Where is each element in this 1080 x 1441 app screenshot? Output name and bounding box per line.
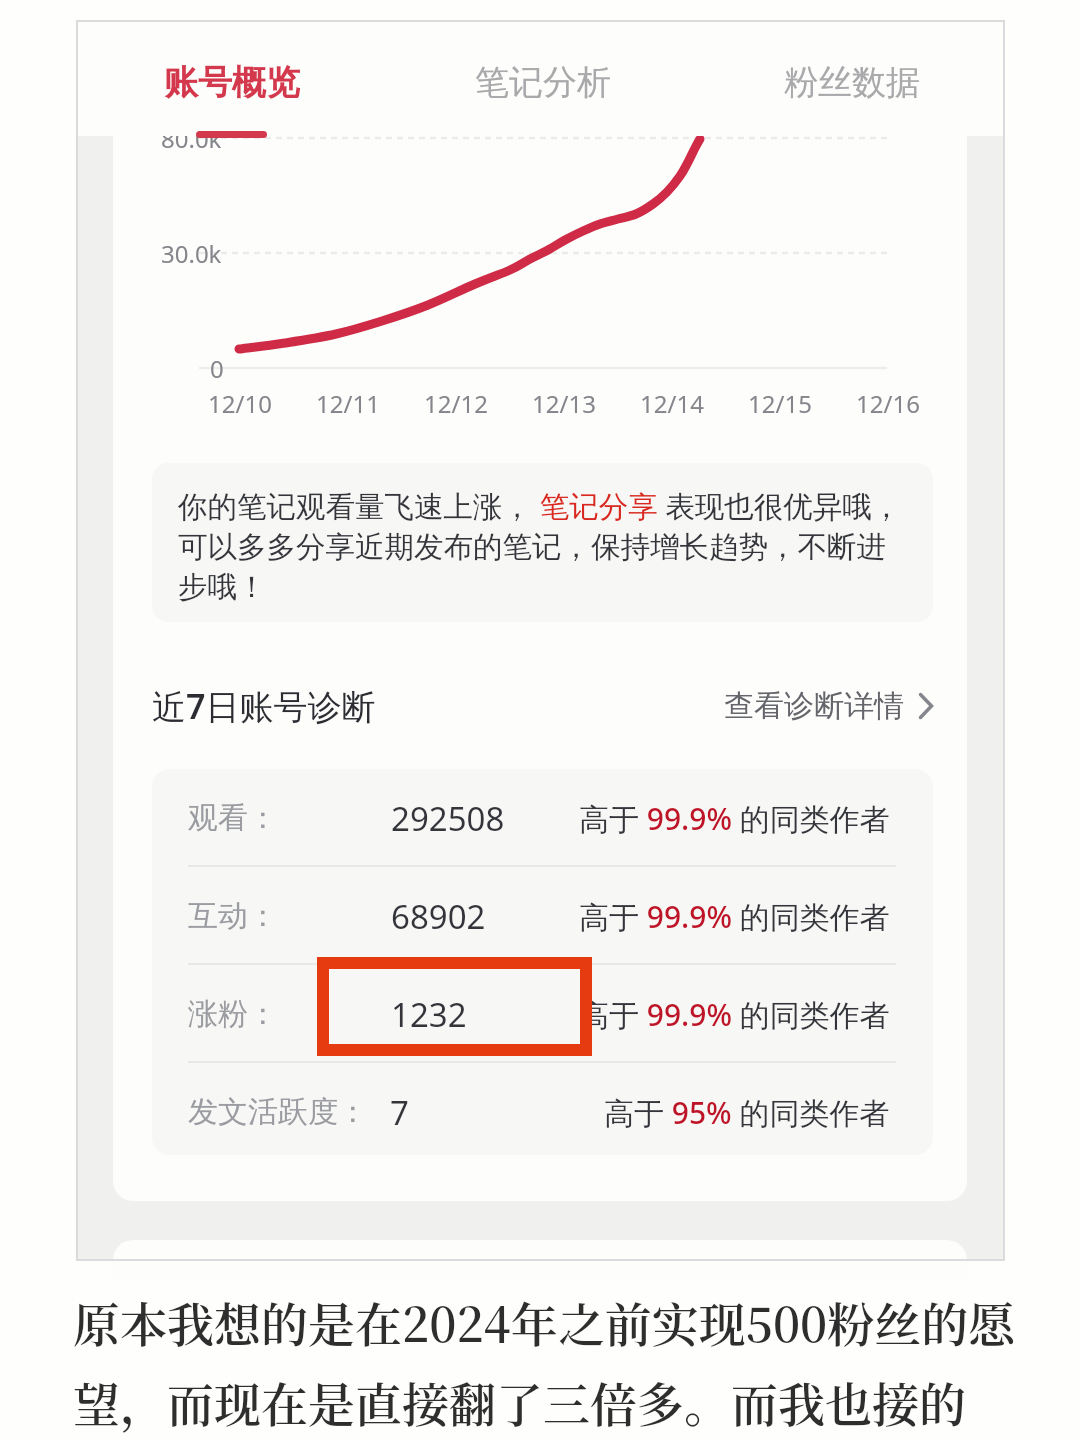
button[interactable]: 互动：	[152, 867, 933, 965]
staticText: 12/12	[396, 387, 516, 420]
staticText: 粉丝数据	[784, 61, 920, 104]
staticText: 12/15	[720, 387, 840, 420]
staticText: 7	[390, 1090, 409, 1135]
staticText: 查看诊断详情	[724, 687, 904, 725]
staticText: 12/13	[504, 387, 624, 420]
button[interactable]: 观看：	[152, 769, 933, 867]
staticText: 高于 99.9% 的同类作者	[579, 994, 890, 1035]
staticText: 账号概览	[164, 61, 300, 104]
staticText: 292508	[391, 796, 505, 841]
button[interactable]: 账号概览	[123, 28, 341, 136]
staticText: 0	[210, 352, 224, 385]
staticText: 互动：	[188, 897, 278, 935]
button[interactable]: 粉丝数据	[743, 28, 961, 136]
button[interactable]: 近7日账号诊断	[152, 672, 933, 740]
staticText: 近7日账号诊断	[152, 683, 376, 729]
staticText: 原本我想的是在2024年之前实现500粉丝的愿	[73, 1288, 1016, 1356]
staticText: 发文活跃度：	[188, 1093, 368, 1131]
button[interactable]: 涨粉：	[152, 965, 933, 1063]
staticText: 高于 99.9% 的同类作者	[579, 798, 890, 839]
button[interactable]: 笔记分析	[434, 28, 652, 136]
staticText: 涨粉：	[188, 995, 278, 1033]
staticText: 12/11	[288, 387, 408, 420]
staticText: 12/14	[612, 387, 732, 420]
button[interactable]: 发文活跃度：	[152, 1063, 933, 1155]
staticText: 望，而现在是直接翻了三倍多。而我也接的	[73, 1368, 966, 1436]
staticText: 30.0k	[161, 237, 222, 270]
staticText: 12/10	[180, 387, 300, 420]
staticText: 高于 95% 的同类作者	[604, 1092, 890, 1133]
staticText: 80.0k	[161, 122, 222, 155]
staticText: 你的笔记观看量飞速上涨， 笔记分享 表现也很优异哦， 可以多多分享近期发布的笔记…	[178, 485, 902, 606]
staticText: 笔记分析	[475, 61, 611, 104]
staticText: 12/16	[828, 387, 948, 420]
staticText: 高于 99.9% 的同类作者	[579, 896, 890, 937]
staticText: 观看：	[188, 799, 278, 837]
staticText: 1232	[391, 992, 467, 1037]
staticText: 68902	[391, 894, 486, 939]
